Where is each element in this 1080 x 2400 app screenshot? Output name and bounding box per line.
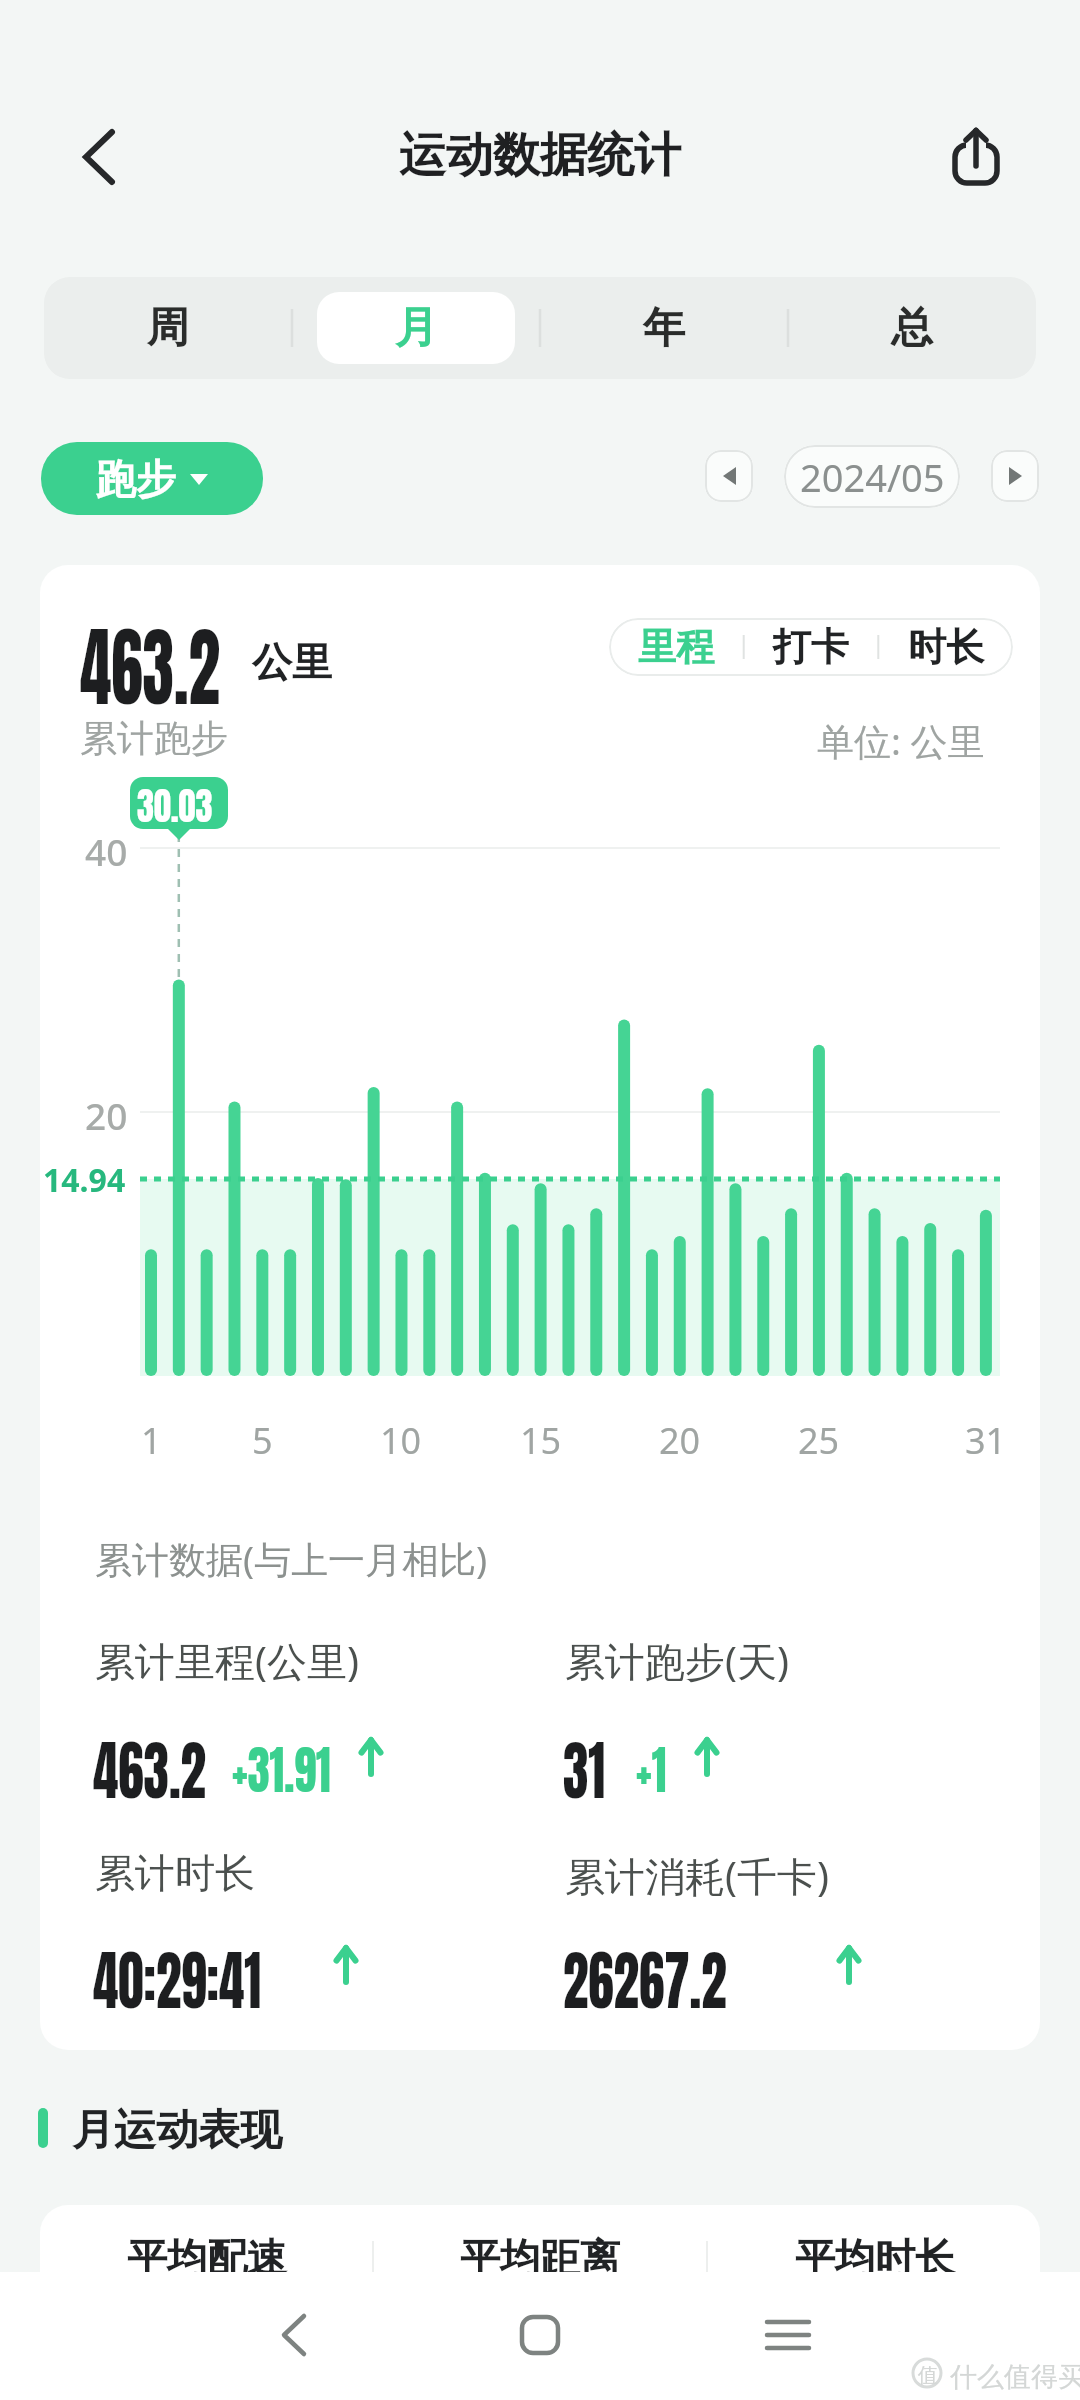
- staticText: 时长: [908, 623, 984, 671]
- button[interactable]: 时长: [878, 618, 1013, 676]
- staticText: 31: [563, 1723, 605, 1819]
- staticText: 累计跑步: [80, 715, 228, 762]
- staticText: 2024/05: [800, 451, 945, 503]
- button[interactable]: [705, 450, 753, 502]
- staticText: +31.91: [232, 1731, 331, 1809]
- staticText: 打卡: [773, 623, 849, 671]
- button[interactable]: 月: [292, 277, 540, 379]
- button[interactable]: 周: [44, 277, 292, 379]
- button[interactable]: [930, 112, 1022, 202]
- staticText: 14.94: [43, 1158, 126, 1202]
- staticText: 累计消耗(千卡): [565, 1848, 829, 1903]
- button[interactable]: [244, 2285, 344, 2385]
- staticText: +1: [636, 1731, 667, 1809]
- staticText: 26267.2: [563, 1933, 727, 2029]
- button[interactable]: 总: [788, 277, 1036, 379]
- staticText: 463.2: [80, 600, 220, 732]
- button[interactable]: 里程: [609, 618, 743, 676]
- staticText: 平均配速: [127, 2233, 287, 2283]
- staticText: 年: [643, 302, 685, 355]
- staticText: 1: [141, 1416, 162, 1460]
- staticText: 累计时长: [95, 1848, 255, 1898]
- staticText: 20: [659, 1416, 701, 1460]
- staticText: 周: [147, 302, 189, 355]
- button[interactable]: 跑步: [41, 442, 263, 515]
- staticText: 累计里程(公里): [95, 1633, 359, 1688]
- staticText: 月: [395, 301, 438, 355]
- button[interactable]: [490, 2285, 590, 2385]
- staticText: 463.2: [93, 1723, 207, 1819]
- button[interactable]: [738, 2285, 838, 2385]
- button[interactable]: 年: [540, 277, 788, 379]
- staticText: 运动数据统计: [399, 126, 681, 185]
- button[interactable]: [991, 450, 1039, 502]
- staticText: 40: [85, 826, 128, 870]
- staticText: 10: [380, 1416, 422, 1460]
- staticText: 值: [918, 2363, 938, 2388]
- staticText: 什么值得买: [950, 2360, 1080, 2394]
- staticText: 平均时长: [795, 2233, 955, 2283]
- staticText: 30.03: [137, 777, 213, 829]
- staticText: 5: [252, 1416, 273, 1460]
- staticText: 20: [85, 1090, 128, 1134]
- staticText: 40:29:41: [93, 1933, 262, 2029]
- staticText: 月运动表现: [72, 2104, 282, 2157]
- staticText: 公里: [252, 637, 332, 687]
- staticText: 单位: 公里: [817, 715, 985, 766]
- staticText: 15: [520, 1416, 562, 1460]
- staticText: 31: [965, 1416, 1007, 1460]
- staticText: 平均距离: [460, 2233, 620, 2283]
- button[interactable]: 打卡: [743, 618, 878, 676]
- staticText: 25: [798, 1416, 840, 1460]
- staticText: 跑步: [96, 454, 176, 504]
- staticText: 累计数据(与上一月相比): [95, 1533, 488, 1584]
- staticText: 总: [891, 302, 933, 355]
- staticText: 累计跑步(天): [565, 1633, 789, 1688]
- staticText: 里程: [638, 623, 714, 671]
- button[interactable]: [55, 112, 145, 202]
- button[interactable]: 2024/05: [784, 445, 960, 508]
